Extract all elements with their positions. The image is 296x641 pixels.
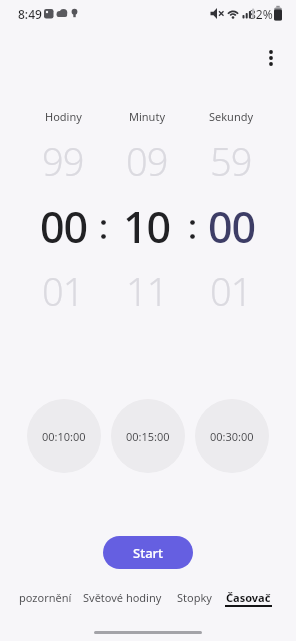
staticText: 00:10:00 xyxy=(42,429,86,444)
button[interactable] xyxy=(257,44,285,72)
staticText: Hodiny xyxy=(45,109,82,124)
staticText: 00 xyxy=(208,197,256,247)
staticText: 59 xyxy=(210,135,252,181)
button[interactable]: 00:30:00 xyxy=(195,399,269,473)
button[interactable]: Start xyxy=(103,536,193,569)
staticText: Minuty xyxy=(129,109,165,124)
staticText: 00 xyxy=(40,197,88,247)
staticText: Časovač xyxy=(226,590,271,605)
staticText: 01 xyxy=(42,265,84,311)
staticText: pozornění xyxy=(19,590,72,605)
staticText: Start xyxy=(133,544,164,562)
staticText: Sekundy xyxy=(209,109,254,124)
staticText: 00:30:00 xyxy=(210,429,254,444)
staticText: Stopky xyxy=(177,590,212,605)
button[interactable]: 00:15:00 xyxy=(111,399,185,473)
staticText: 99 xyxy=(42,135,84,181)
button[interactable]: Stopky xyxy=(0,0,56,20)
staticText: 11 xyxy=(126,265,168,311)
staticText: 00:15:00 xyxy=(126,429,170,444)
button[interactable]: Světové hodiny xyxy=(0,0,92,20)
button[interactable]: Časovač xyxy=(0,0,56,20)
staticText: Světové hodiny xyxy=(83,590,162,605)
staticText: 10 xyxy=(123,197,171,247)
button[interactable]: pozornění xyxy=(0,0,70,20)
staticText: 82% xyxy=(249,6,273,22)
staticText: 09 xyxy=(126,135,168,181)
staticText: 01 xyxy=(210,265,252,311)
button[interactable]: 00:10:00 xyxy=(27,399,101,473)
staticText: 8:49 xyxy=(18,6,42,22)
